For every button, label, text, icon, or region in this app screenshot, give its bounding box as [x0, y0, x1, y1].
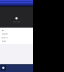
button[interactable]: General: [0, 36, 33, 39]
staticText: Display: [1, 40, 6, 42]
staticText: Wi-Fi: [1, 30, 3, 31]
button[interactable]: Wi-Fi: [0, 29, 33, 32]
staticText: Overview: [13, 21, 20, 23]
staticText: General: [1, 37, 7, 39]
staticText: Bluetooth: [1, 33, 7, 35]
button[interactable]: Display: [0, 39, 33, 43]
button[interactable]: Bluetooth: [0, 32, 33, 36]
button[interactable]: Now playing artwork: [0, 64, 6, 71]
